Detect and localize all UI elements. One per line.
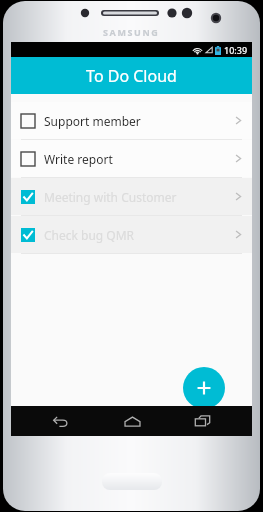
staticText: SAMSUNG [103, 26, 160, 38]
button[interactable]: Back [41, 406, 81, 436]
staticText: Meeting with Customer [44, 189, 235, 205]
staticText: Write report [44, 151, 235, 167]
staticText: Support member [44, 113, 235, 129]
button[interactable]: Recent apps [182, 406, 222, 436]
button[interactable]: Add task [183, 367, 225, 409]
button[interactable]: Home [112, 406, 152, 436]
button[interactable]: Support member [11, 102, 252, 139]
button[interactable]: Check bug QMR [11, 216, 252, 253]
button[interactable]: Home button [102, 473, 162, 490]
button[interactable]: Meeting with Customer [11, 178, 252, 215]
staticText: Check bug QMR [44, 227, 235, 243]
staticText: 10:39 [224, 44, 248, 56]
button[interactable]: Write report [11, 140, 252, 177]
staticText: To Do Cloud [86, 65, 177, 87]
